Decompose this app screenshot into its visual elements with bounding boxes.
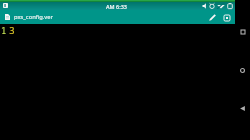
staticText: 1	[1, 24, 7, 36]
button[interactable]: Recents	[235, 24, 250, 39]
button[interactable]: Save	[221, 12, 232, 23]
staticText: AM 6:33	[106, 3, 128, 10]
button[interactable]: Open file	[2, 12, 12, 22]
staticText: pxs_config.ver	[14, 13, 53, 21]
button[interactable]: Back	[235, 101, 250, 116]
button[interactable]: Edit	[206, 11, 219, 24]
staticText: 3	[9, 24, 15, 37]
button[interactable]: Home	[235, 63, 250, 78]
